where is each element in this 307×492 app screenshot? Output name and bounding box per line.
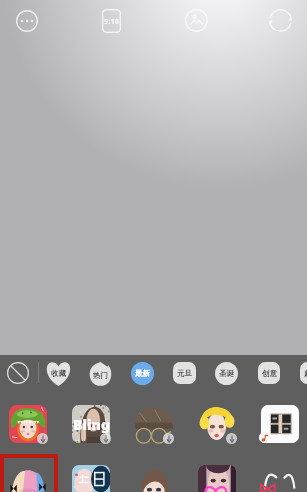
button[interactable]: Crocodile hat sticker bbox=[9, 405, 47, 443]
button[interactable]: Aspect ratio 9 by 16 bbox=[98, 4, 125, 37]
button[interactable]: 趣味 bbox=[300, 362, 307, 384]
button[interactable]: Portrait sticker bbox=[135, 465, 173, 492]
button[interactable]: Bling sticker bbox=[72, 405, 110, 443]
button[interactable]: Pink hair girl sticker bbox=[9, 465, 47, 492]
button[interactable]: 创意 bbox=[258, 362, 280, 384]
staticText: 趣味 bbox=[304, 369, 307, 378]
button[interactable]: More options bbox=[11, 5, 43, 37]
staticText: 元旦 bbox=[177, 369, 192, 378]
button[interactable]: Blonde face sticker bbox=[198, 405, 236, 443]
button[interactable]: 热门 bbox=[89, 362, 112, 386]
button[interactable]: No sticker bbox=[2, 357, 34, 389]
button[interactable]: 圣诞 bbox=[215, 362, 238, 385]
staticText: 收藏 bbox=[51, 369, 66, 378]
button[interactable]: 收藏 bbox=[45, 362, 72, 386]
staticText: Bling bbox=[73, 415, 110, 434]
button[interactable]: Pink heart sticker bbox=[198, 465, 236, 492]
button[interactable]: Hat and glasses sticker bbox=[135, 405, 173, 443]
button[interactable]: Subway poster sticker bbox=[259, 405, 301, 443]
button[interactable]: Gallery bbox=[180, 4, 213, 37]
button[interactable]: Blue sticker bbox=[72, 465, 110, 492]
staticText: 热门 bbox=[93, 371, 108, 380]
button[interactable]: Switch camera bbox=[264, 4, 297, 37]
staticText: 9:16 bbox=[104, 16, 119, 26]
button[interactable]: 最新 bbox=[131, 362, 154, 385]
staticText: 圣诞 bbox=[219, 369, 234, 378]
staticText: 创意 bbox=[262, 369, 277, 378]
staticText: 最新 bbox=[135, 369, 150, 378]
button[interactable]: Cat ears sticker bbox=[261, 465, 299, 492]
button[interactable]: 元旦 bbox=[173, 362, 196, 384]
